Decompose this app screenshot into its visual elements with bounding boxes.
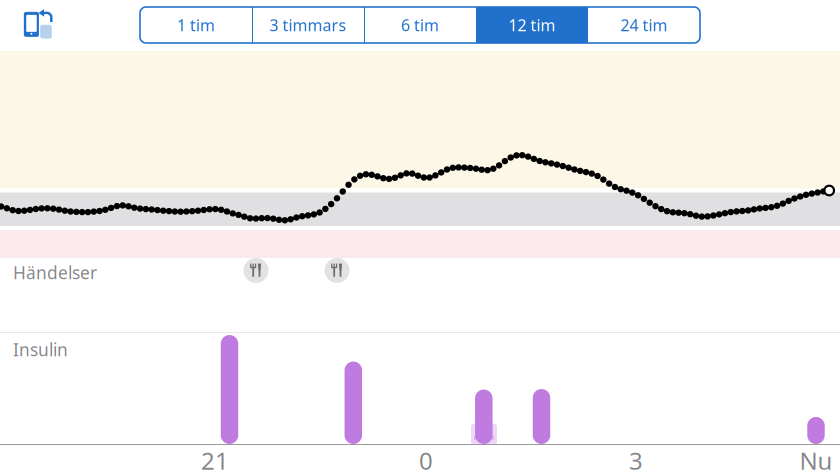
button[interactable]: Insulin dose <box>807 417 825 444</box>
staticText: 24 tim <box>620 14 667 36</box>
button[interactable]: Insulin dose <box>221 335 238 444</box>
button[interactable]: 3 timmars <box>252 7 364 43</box>
button[interactable]: 1 tim <box>140 7 252 43</box>
button[interactable]: Meal event <box>243 258 268 283</box>
staticText: 6 tim <box>401 14 439 36</box>
button[interactable]: Rotate device <box>18 0 58 46</box>
button[interactable]: 6 tim <box>364 7 476 43</box>
staticText: 0 <box>419 445 433 472</box>
staticText: Insulin <box>13 338 68 361</box>
staticText: 21 <box>201 445 229 472</box>
staticText: 3 timmars <box>269 14 346 36</box>
button[interactable]: Meal event <box>324 258 349 283</box>
staticText: 1 tim <box>177 14 215 36</box>
staticText: 3 <box>629 445 643 472</box>
button[interactable]: 24 tim <box>588 7 700 43</box>
button[interactable]: Insulin dose <box>533 389 550 444</box>
button[interactable]: Insulin dose <box>345 361 362 444</box>
staticText: Händelser <box>13 261 97 284</box>
staticText: Nu <box>799 445 832 472</box>
button[interactable]: 12 tim <box>476 7 588 43</box>
button[interactable]: Insulin dose <box>475 389 493 444</box>
staticText: 12 tim <box>508 14 555 36</box>
